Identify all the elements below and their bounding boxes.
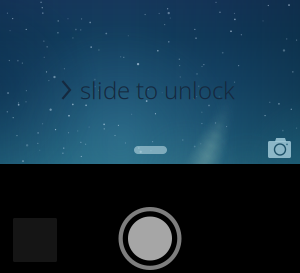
staticText: slide to unlock [80,74,235,106]
button[interactable]: Camera [268,138,291,158]
button[interactable]: Take photo [118,207,181,270]
